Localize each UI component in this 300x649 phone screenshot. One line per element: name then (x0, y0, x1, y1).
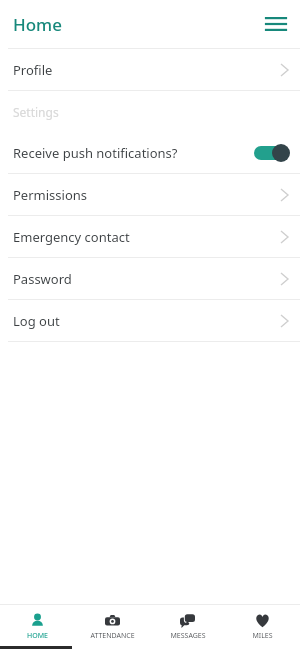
button[interactable]: Password (0, 258, 300, 299)
staticText: Home (13, 13, 62, 36)
staticText: Emergency contact (13, 228, 130, 246)
button[interactable]: MILES (225, 605, 300, 649)
button[interactable]: Receive push notifications? (0, 132, 300, 173)
staticText: Log out (13, 312, 60, 330)
button[interactable]: Permissions (0, 174, 300, 215)
staticText: MILES (252, 631, 273, 641)
button[interactable]: HOME (0, 605, 75, 649)
button[interactable]: Emergency contact (0, 216, 300, 257)
staticText: Profile (13, 61, 53, 79)
staticText: ATTENDANCE (90, 631, 135, 641)
button[interactable]: Menu (262, 10, 290, 38)
staticText: Settings (13, 104, 59, 120)
staticText: Password (13, 270, 72, 288)
button[interactable]: Log out (0, 300, 300, 341)
staticText: HOME (27, 631, 48, 641)
button[interactable]: Profile (0, 49, 300, 90)
button[interactable]: ATTENDANCE (75, 605, 150, 649)
staticText: Receive push notifications? (13, 144, 178, 162)
staticText: MESSAGES (170, 631, 206, 641)
button[interactable]: MESSAGES (150, 605, 225, 649)
staticText: Permissions (13, 186, 88, 204)
